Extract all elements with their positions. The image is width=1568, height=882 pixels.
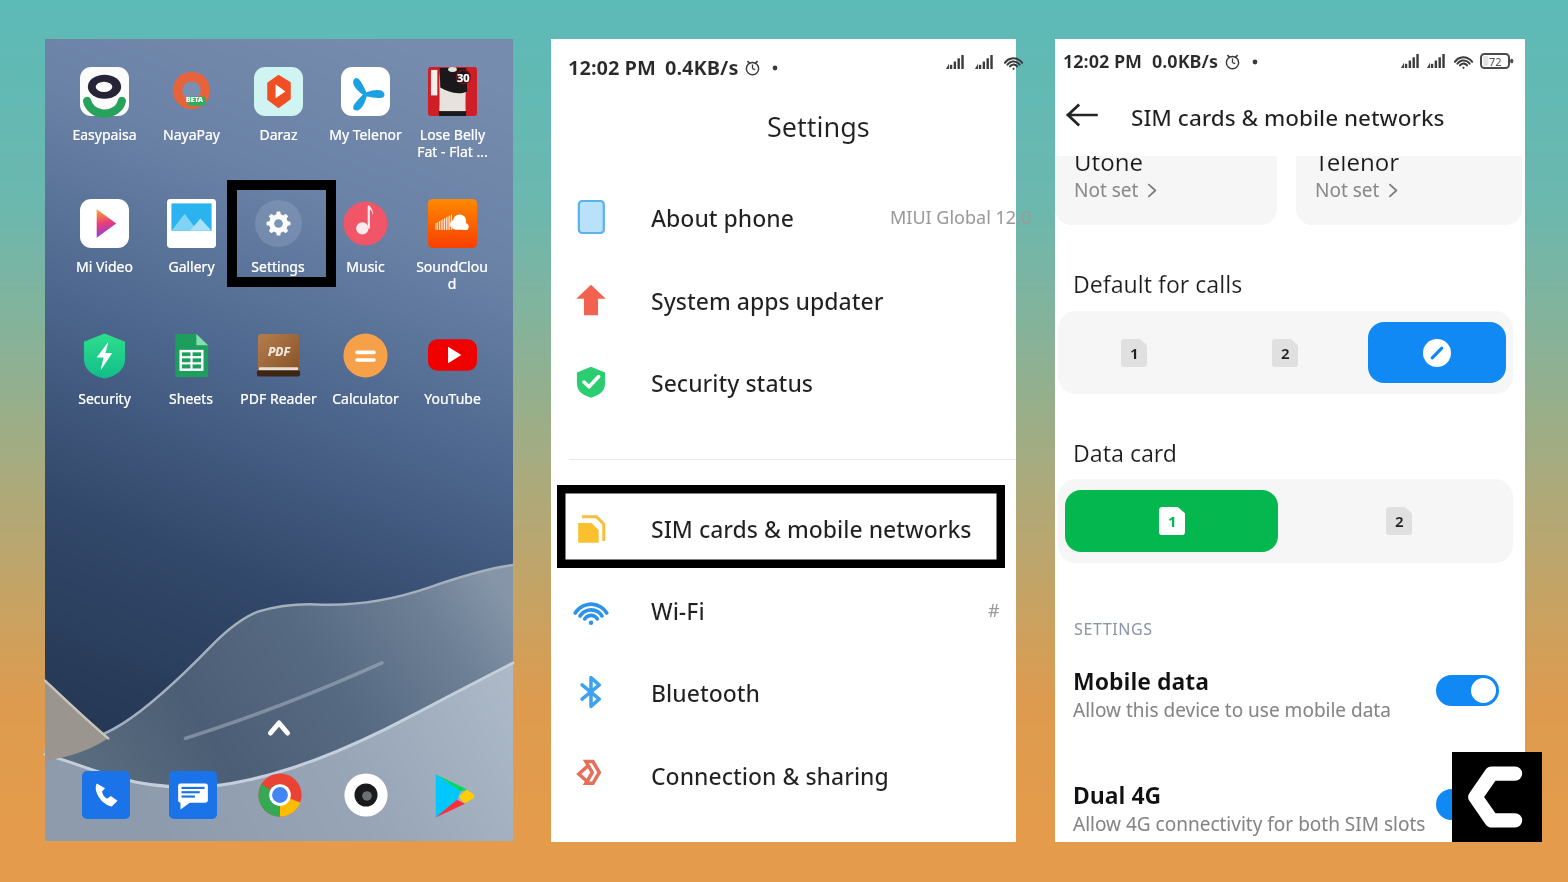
button[interactable]: SIM 2 [1216, 322, 1354, 383]
button[interactable]: Messages [169, 771, 217, 819]
button[interactable]: Daraz [235, 67, 321, 157]
button[interactable]: About phone [551, 176, 1016, 258]
staticText: BETA [186, 95, 203, 105]
button[interactable]: Security [61, 331, 147, 421]
staticText: About phone [651, 202, 794, 233]
staticText: Settings [251, 257, 305, 276]
staticText: Telenor [1315, 156, 1400, 178]
staticText: Daraz [259, 125, 298, 144]
staticText: PDF [268, 343, 290, 359]
button[interactable]: Wi-Fi [551, 569, 1016, 651]
staticText: Mi Video [76, 257, 133, 276]
staticText: SoundClou d [416, 257, 488, 293]
staticText: YouTube [424, 389, 481, 408]
staticText: Calculator [332, 389, 399, 408]
button[interactable]: Always ask [1368, 322, 1506, 383]
staticText: Lose Belly Fat - Flat ... [417, 125, 488, 157]
other: Logo [1452, 752, 1542, 842]
button[interactable]: Phone [82, 771, 130, 819]
button[interactable]: Chrome [256, 771, 304, 819]
button[interactable]: Gallery [148, 199, 234, 299]
button[interactable]: Dual 4G [1055, 769, 1525, 849]
button[interactable]: SIM 1 [1065, 490, 1278, 552]
button[interactable]: Play Store [429, 771, 477, 819]
staticText: Default for calls [1073, 268, 1243, 299]
staticText: Music [346, 257, 385, 276]
button[interactable]: PDF [235, 331, 321, 421]
staticText: 12:02 PM [568, 54, 656, 81]
staticText: Sheets [169, 389, 213, 408]
staticText: Connection & sharing [651, 760, 889, 791]
staticText: Bluetooth [651, 677, 761, 708]
button[interactable]: SoundClou d [409, 199, 495, 299]
button[interactable]: SIM 2 [1292, 490, 1506, 552]
button[interactable]: Security status [551, 341, 1016, 423]
staticText: Mobile data [1073, 665, 1210, 696]
button[interactable]: Sheets [148, 331, 234, 421]
staticText: 1 [1130, 343, 1139, 363]
staticText: PDF Reader [240, 389, 317, 408]
button[interactable]: Music [322, 199, 408, 299]
staticText: 0.0KB/s [1152, 49, 1219, 74]
staticText: Easypaisa [72, 125, 137, 144]
button[interactable]: System apps updater [551, 259, 1016, 341]
button[interactable]: Mobile data [1055, 655, 1525, 735]
staticText: My Telenor [329, 125, 402, 144]
button[interactable]: 30 [409, 67, 495, 157]
staticText: Wi-Fi [651, 595, 705, 626]
staticText: Data card [1073, 437, 1178, 468]
button[interactable]: Utone [1055, 156, 1277, 225]
staticText: Dual 4G [1073, 779, 1162, 810]
button[interactable]: Back [1060, 93, 1104, 137]
staticText: Allow this device to use mobile data [1073, 697, 1391, 723]
staticText: 0.4KB/s [665, 54, 739, 81]
staticText: 30 [457, 70, 470, 85]
staticText: Security status [651, 367, 813, 398]
button[interactable]: Telenor [1296, 156, 1522, 225]
staticText: Gallery [168, 257, 215, 276]
staticText: Not set [1315, 177, 1380, 203]
staticText: Not set [1074, 177, 1139, 203]
button[interactable]: YouTube [409, 331, 495, 421]
button[interactable]: SIM cards & mobile networks [551, 487, 1016, 569]
staticText: MIUI Global 12.0 [890, 205, 1032, 230]
button[interactable] [1436, 789, 1499, 820]
staticText: 2 [1281, 343, 1290, 363]
staticText: 1 [1168, 511, 1177, 531]
staticText: # [988, 598, 1000, 623]
button[interactable]: Connection & sharing [551, 734, 1016, 816]
button[interactable]: Camera [342, 771, 390, 819]
button[interactable]: My Telenor [322, 67, 408, 157]
staticText: SIM cards & mobile networks [651, 513, 972, 544]
staticText: NayaPay [163, 125, 220, 144]
staticText: 72 [1489, 54, 1502, 68]
staticText: Utone [1074, 156, 1144, 178]
button[interactable]: Bluetooth [551, 651, 1016, 733]
staticText: Security [78, 389, 131, 408]
staticText: SETTINGS [1074, 618, 1153, 640]
button[interactable]: SIM 1 [1065, 322, 1202, 383]
staticText: Settings [767, 108, 870, 145]
button[interactable] [1436, 675, 1499, 706]
button[interactable]: Mi Video [61, 199, 147, 299]
button[interactable]: Easypaisa [61, 67, 147, 157]
staticText: 2 [1395, 511, 1404, 531]
button[interactable]: BETA [148, 67, 234, 157]
staticText: Allow 4G connectivity for both SIM slots [1073, 811, 1426, 837]
button[interactable]: Calculator [322, 331, 408, 421]
staticText: System apps updater [651, 285, 884, 316]
button[interactable]: Settings [235, 199, 321, 299]
staticText: 12:02 PM [1063, 49, 1143, 74]
staticText: SIM cards & mobile networks [1131, 102, 1445, 133]
